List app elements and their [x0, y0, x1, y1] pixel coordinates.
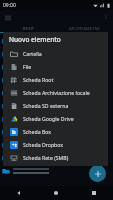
- staticText: Scheda Box: [23, 128, 52, 135]
- button[interactable]: Scheda SD esterna: [3, 99, 108, 112]
- button[interactable]: [0, 164, 113, 177]
- button[interactable]: Cartella: [3, 47, 108, 60]
- staticText: 09:00: [3, 2, 16, 9]
- staticText: Scheda Google Drive: [23, 115, 74, 122]
- button[interactable]: Recenti: [75, 186, 113, 200]
- staticText: b: [12, 128, 16, 136]
- button[interactable]: [0, 138, 113, 151]
- staticText: File: [23, 63, 32, 70]
- button[interactable]: [0, 73, 113, 86]
- button[interactable]: Indietro: [0, 186, 37, 200]
- button[interactable]: File: [3, 60, 108, 73]
- staticText: Scheda Root: [23, 76, 54, 83]
- staticText: Nuovo elemento: [9, 35, 61, 44]
- button[interactable]: ARCHIVIAZIONE: [56, 24, 113, 32]
- button[interactable]: [0, 60, 113, 73]
- button[interactable]: [0, 99, 113, 112]
- button[interactable]: ROOT: [0, 24, 56, 32]
- button[interactable]: Scheda Google Drive: [3, 112, 108, 125]
- button[interactable]: Home: [37, 186, 75, 200]
- staticText: Cartella: [23, 50, 42, 57]
- staticText: ROOT: [23, 26, 34, 31]
- staticText: Scheda Dropbox: [23, 141, 64, 148]
- button[interactable]: [0, 47, 113, 60]
- button[interactable]: [0, 86, 113, 99]
- button[interactable]: Scheda Archiviazione locale: [3, 86, 108, 99]
- button[interactable]: Scheda Root: [3, 73, 108, 86]
- button[interactable]: Nuovo elemento: [89, 165, 106, 182]
- button[interactable]: Più opzioni: [101, 12, 111, 22]
- button[interactable]: Scheda Dropbox: [3, 138, 108, 151]
- staticText: ARCHIVIAZIONE: [69, 26, 100, 31]
- button[interactable]: [0, 151, 113, 164]
- button[interactable]: [0, 34, 113, 47]
- button[interactable]: Menu: [2, 12, 13, 23]
- button[interactable]: [0, 112, 113, 125]
- staticText: Scheda Archiviazione locale: [23, 89, 90, 96]
- button[interactable]: [0, 125, 113, 138]
- staticText: Scheda Rete (SMB): [23, 154, 69, 161]
- button[interactable]: b: [3, 125, 108, 138]
- button[interactable]: Scheda Rete (SMB): [3, 151, 108, 164]
- staticText: Scheda SD esterna: [23, 102, 69, 109]
